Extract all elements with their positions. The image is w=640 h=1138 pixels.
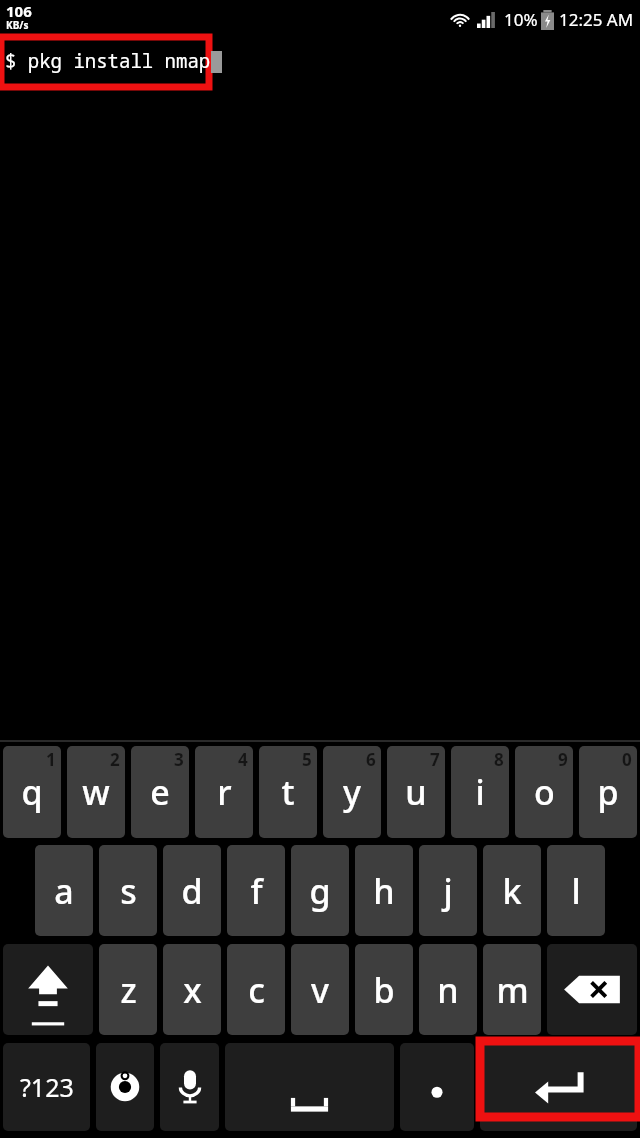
staticText: 0 — [622, 748, 632, 771]
staticText: 10% — [504, 8, 538, 31]
staticText: k — [502, 868, 522, 914]
button[interactable]: k — [483, 845, 541, 936]
staticText: s — [120, 868, 137, 914]
staticText: 3 — [174, 748, 184, 771]
staticText: y — [343, 769, 361, 815]
button[interactable]: t — [259, 746, 317, 838]
staticText: $ pkg install nmap — [5, 48, 211, 74]
staticText: 5 — [302, 748, 312, 771]
button[interactable]: h — [355, 845, 413, 936]
staticText: 4 — [238, 748, 248, 771]
button[interactable]: s — [99, 845, 157, 936]
staticText: 8 — [494, 748, 504, 771]
staticText: c — [248, 967, 265, 1013]
button[interactable]: Space — [225, 1043, 394, 1131]
button[interactable]: i — [451, 746, 509, 838]
staticText: q — [21, 769, 43, 815]
staticText: n — [437, 967, 459, 1013]
button[interactable]: a — [35, 845, 93, 936]
staticText: 12:25 AM — [559, 8, 634, 31]
staticText: e — [150, 769, 170, 815]
button[interactable]: g — [291, 845, 349, 936]
staticText: f — [250, 868, 263, 914]
staticText: j — [443, 868, 453, 914]
staticText: 106 — [6, 1, 32, 21]
button[interactable]: ?123 — [3, 1043, 90, 1131]
button[interactable]: j — [419, 845, 477, 936]
button[interactable]: x — [163, 944, 221, 1035]
button[interactable]: q — [3, 746, 61, 838]
button[interactable]: w — [67, 746, 125, 838]
staticText: b — [373, 967, 395, 1013]
staticText: l — [571, 868, 581, 914]
button[interactable]: c — [227, 944, 285, 1035]
staticText: m — [496, 967, 529, 1013]
staticText: 2 — [110, 748, 120, 771]
staticText: d — [181, 868, 203, 914]
button[interactable]: Shift — [3, 944, 93, 1035]
button[interactable]: o — [515, 746, 573, 838]
button[interactable]: p — [579, 746, 637, 838]
button[interactable]: Enter — [480, 1043, 637, 1131]
button[interactable]: Emoji — [96, 1043, 154, 1131]
staticText: KB/s — [6, 18, 29, 32]
button[interactable]: l — [547, 845, 605, 936]
staticText: i — [475, 769, 485, 815]
button[interactable]: Backspace — [547, 944, 637, 1035]
staticText: u — [405, 769, 427, 815]
staticText: x — [183, 967, 202, 1013]
staticText: ?123 — [20, 1070, 74, 1104]
staticText: z — [120, 967, 137, 1013]
staticText: h — [373, 868, 395, 914]
button[interactable]: z — [99, 944, 157, 1035]
staticText: v — [311, 967, 329, 1013]
staticText: 9 — [558, 748, 568, 771]
staticText: w — [82, 769, 110, 815]
staticText: r — [217, 769, 232, 815]
staticText: p — [597, 769, 619, 815]
button[interactable]: m — [483, 944, 541, 1035]
button[interactable]: b — [355, 944, 413, 1035]
button[interactable]: u — [387, 746, 445, 838]
button[interactable]: f — [227, 845, 285, 936]
button[interactable]: y — [323, 746, 381, 838]
staticText: t — [281, 769, 295, 815]
staticText: 7 — [430, 748, 440, 771]
button[interactable]: n — [419, 944, 477, 1035]
staticText: 1 — [46, 748, 56, 771]
button[interactable]: Period — [400, 1043, 474, 1131]
staticText: a — [54, 868, 74, 914]
staticText: g — [309, 868, 331, 914]
button[interactable]: e — [131, 746, 189, 838]
button[interactable]: d — [163, 845, 221, 936]
staticText: o — [534, 769, 555, 815]
button[interactable]: v — [291, 944, 349, 1035]
staticText: 6 — [366, 748, 376, 771]
button[interactable]: Voice input — [160, 1043, 219, 1131]
button[interactable]: r — [195, 746, 253, 838]
